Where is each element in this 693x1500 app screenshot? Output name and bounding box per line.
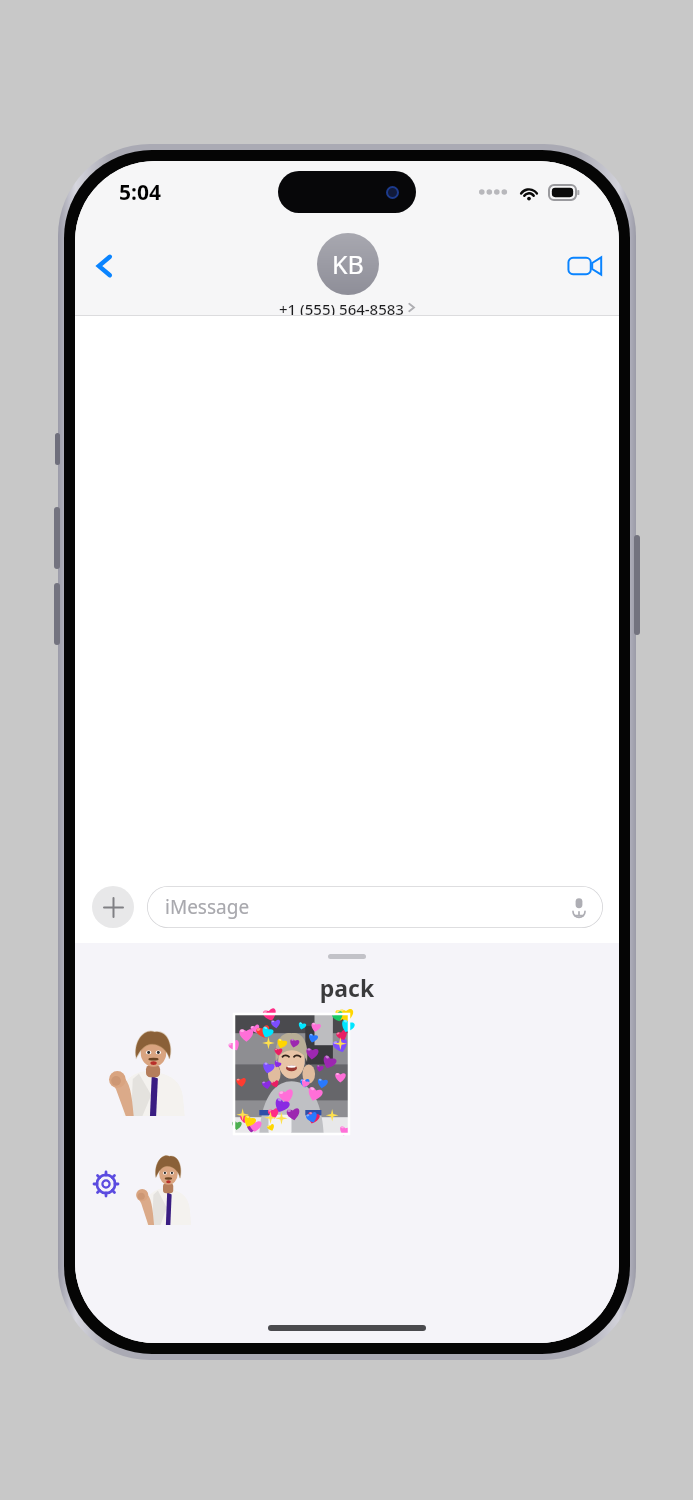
staticText: iMessage xyxy=(165,894,250,920)
staticText: KB xyxy=(332,247,364,281)
button[interactable]: Sticker pack settings xyxy=(89,1167,123,1201)
button[interactable]: iMessage xyxy=(147,886,603,928)
button[interactable]: KB xyxy=(279,233,416,315)
button[interactable]: Dictate xyxy=(563,891,595,923)
button[interactable]: Back xyxy=(81,242,129,290)
staticText: pack xyxy=(75,972,619,1003)
button[interactable]: Sticker: surprised man xyxy=(102,1028,190,1116)
button[interactable]: Add attachment xyxy=(92,886,134,928)
button[interactable]: Drag handle xyxy=(328,954,366,959)
staticText: 5:04 xyxy=(119,178,161,207)
button[interactable]: Sticker: person with hearts xyxy=(234,1014,349,1134)
button[interactable]: FaceTime video call xyxy=(559,240,611,292)
staticText: +1 (555) 564-8583 xyxy=(279,299,404,315)
button[interactable]: Sticker: surprised man small xyxy=(131,1153,195,1225)
